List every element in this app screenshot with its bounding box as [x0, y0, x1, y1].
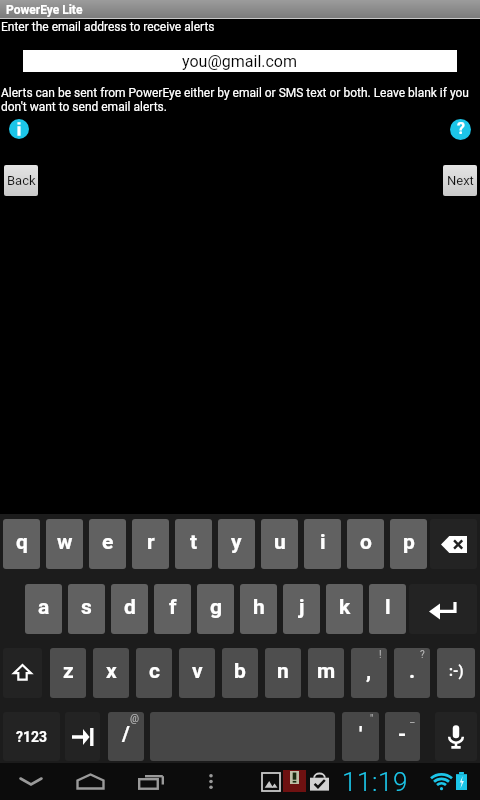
other: Wi-Fi — [431, 774, 452, 790]
staticText: / — [122, 722, 130, 747]
staticText: g — [210, 595, 222, 620]
other: Shift — [13, 664, 32, 683]
button[interactable]: Recent apps — [126, 763, 176, 800]
staticText: h — [253, 595, 265, 620]
staticText: ? — [420, 649, 425, 661]
button[interactable]: :-) — [437, 648, 475, 698]
button[interactable]: y — [218, 519, 255, 569]
button[interactable]: Hide keyboard — [6, 763, 56, 800]
staticText: p — [403, 530, 415, 555]
staticText: . — [409, 659, 416, 684]
staticText: k — [339, 595, 351, 620]
staticText: ' — [359, 722, 363, 747]
button[interactable]: Tab — [65, 712, 100, 761]
button[interactable]: b — [222, 648, 258, 698]
other: Tab — [72, 729, 94, 745]
button[interactable]: t — [175, 519, 212, 569]
button[interactable]: Back — [4, 165, 38, 196]
staticText: x — [106, 659, 117, 684]
staticText: b — [234, 659, 246, 684]
button[interactable]: / — [108, 712, 144, 761]
button[interactable]: l — [369, 584, 406, 634]
staticText: 11:19 — [342, 767, 409, 797]
staticText: s — [81, 595, 92, 620]
staticText: , — [366, 659, 372, 684]
staticText: l — [385, 595, 391, 620]
button[interactable]: Symbols — [3, 712, 60, 761]
staticText: _ — [410, 713, 415, 725]
button[interactable]: Enter — [409, 584, 477, 634]
button[interactable]: z — [50, 648, 86, 698]
button[interactable]: i — [304, 519, 341, 569]
button[interactable]: w — [46, 519, 83, 569]
other: Battery — [456, 772, 467, 790]
button[interactable]: m — [308, 648, 344, 698]
button[interactable]: n — [265, 648, 301, 698]
staticText: r — [147, 530, 155, 555]
staticText: y — [231, 530, 242, 555]
staticText: v — [192, 659, 203, 684]
button[interactable]: Voice input — [435, 712, 477, 761]
staticText: ? — [457, 119, 465, 138]
button[interactable]: , — [351, 648, 387, 698]
button[interactable]: c — [136, 648, 172, 698]
button[interactable]: - — [385, 712, 420, 761]
button[interactable]: e — [89, 519, 126, 569]
staticText: e — [102, 530, 114, 555]
other: Voice input — [447, 724, 465, 750]
button[interactable]: q — [3, 519, 40, 569]
staticText: j — [299, 595, 305, 620]
staticText: Alerts can be sent from PowerEye either … — [1, 86, 477, 114]
button[interactable]: g — [197, 584, 234, 634]
staticText: @ — [130, 713, 139, 725]
button[interactable]: ' — [342, 712, 379, 761]
button[interactable]: . — [394, 648, 430, 698]
staticText: Next — [447, 173, 474, 188]
button[interactable]: you@gmail.com — [23, 50, 457, 72]
button[interactable]: p — [390, 519, 427, 569]
button[interactable]: Next — [443, 165, 477, 196]
staticText: w — [57, 530, 73, 555]
staticText: ?123 — [16, 729, 48, 745]
button[interactable]: Shift — [3, 648, 42, 698]
button[interactable]: a — [25, 584, 62, 634]
button[interactable]: x — [93, 648, 129, 698]
staticText: f — [169, 595, 177, 620]
button[interactable]: o — [347, 519, 384, 569]
other: Backspace — [441, 536, 467, 553]
button[interactable]: Help — [450, 119, 471, 140]
button[interactable]: More options — [190, 763, 232, 800]
button[interactable]: r — [132, 519, 169, 569]
staticText: t — [190, 530, 198, 555]
button[interactable]: Information — [9, 119, 29, 139]
button[interactable]: u — [261, 519, 298, 569]
staticText: u — [274, 530, 286, 555]
staticText: d — [124, 595, 136, 620]
button[interactable]: k — [326, 584, 363, 634]
staticText: " — [370, 713, 374, 725]
button[interactable]: j — [283, 584, 320, 634]
staticText: - — [398, 722, 407, 747]
button[interactable]: v — [179, 648, 215, 698]
button[interactable]: d — [111, 584, 148, 634]
button[interactable]: s — [68, 584, 105, 634]
staticText: :-) — [449, 663, 464, 679]
staticText: i — [320, 530, 326, 555]
staticText: Back — [7, 173, 36, 188]
staticText: q — [16, 530, 28, 555]
button[interactable]: h — [240, 584, 277, 634]
staticText: PowerEye Lite — [6, 3, 83, 17]
staticText: you@gmail.com — [182, 52, 298, 71]
staticText: n — [277, 659, 289, 684]
staticText: z — [63, 659, 74, 684]
button[interactable]: f — [154, 584, 191, 634]
staticText: m — [317, 659, 336, 684]
other: Enter — [429, 599, 457, 619]
staticText: Enter the email address to receive alert… — [1, 20, 215, 34]
staticText: ! — [379, 649, 382, 661]
button[interactable]: Backspace — [430, 519, 477, 569]
button[interactable]: Home — [65, 763, 115, 800]
staticText: o — [360, 530, 372, 555]
staticText: c — [149, 659, 160, 684]
